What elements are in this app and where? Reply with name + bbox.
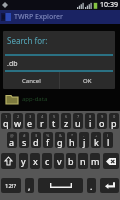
staticText: % (46, 133, 50, 138)
button[interactable]: m (90, 153, 100, 169)
button[interactable]: App icon, navigate up (1, 13, 11, 21)
staticText: + (95, 133, 98, 138)
staticText: 3 (29, 114, 32, 119)
button[interactable]: k (91, 132, 101, 148)
button[interactable]: a (7, 132, 17, 148)
staticText: Cancel (22, 77, 41, 85)
staticText: 4 (41, 114, 44, 119)
staticText: j (83, 136, 86, 148)
staticText: m (91, 155, 100, 167)
button[interactable]: Backspace (103, 153, 119, 169)
button[interactable]: c (42, 153, 52, 169)
staticText: k (94, 136, 99, 148)
button[interactable]: t (49, 113, 59, 129)
staticText: i (89, 117, 92, 129)
staticText: w (14, 117, 22, 129)
button[interactable]: Space (38, 178, 83, 193)
staticText: * (71, 133, 74, 138)
staticText: TWRP Explorer (14, 12, 64, 22)
button[interactable]: q (1, 113, 11, 129)
button[interactable]: 12!? (1, 178, 21, 193)
staticText: t (52, 117, 56, 129)
button[interactable]: l (103, 132, 113, 148)
button[interactable]: i (85, 113, 95, 129)
button[interactable]: y (19, 153, 28, 169)
button[interactable]: . (87, 178, 96, 193)
staticText: z (64, 117, 69, 129)
staticText: o (99, 117, 105, 129)
staticText: OK (83, 77, 92, 85)
staticText: 8 (89, 114, 92, 119)
staticText: n (80, 155, 86, 167)
button[interactable]: u (73, 113, 83, 129)
button[interactable]: o (97, 113, 107, 129)
staticText: @ (10, 133, 14, 138)
staticText: e (27, 117, 33, 129)
staticText: d (33, 136, 39, 148)
staticText: 6 (65, 114, 68, 119)
button[interactable]: b (66, 153, 76, 169)
staticText: f (46, 136, 50, 148)
staticText: , (28, 180, 31, 192)
staticText: app-data (22, 95, 48, 103)
button[interactable]: Enter (100, 178, 119, 193)
staticText: . (90, 180, 93, 192)
staticText: 0 (113, 114, 116, 119)
staticText: h (69, 136, 75, 148)
staticText: y (21, 155, 26, 167)
staticText: s (22, 136, 27, 148)
button[interactable]: g (55, 132, 65, 148)
button[interactable]: h (67, 132, 77, 148)
button[interactable]: n (78, 153, 88, 169)
staticText: $ (35, 133, 38, 138)
staticText: q (3, 117, 9, 129)
staticText: g (57, 136, 63, 148)
staticText: c (45, 155, 50, 167)
staticText: l (107, 136, 110, 148)
button[interactable]: r (37, 113, 47, 129)
staticText: v (57, 155, 62, 167)
button[interactable]: e (25, 113, 35, 129)
button[interactable]: j (79, 132, 89, 148)
staticText: p (111, 117, 117, 129)
staticText: 1 (5, 114, 8, 119)
staticText: b (68, 155, 74, 167)
button[interactable]: Shift (1, 153, 16, 169)
staticText: & (59, 133, 62, 138)
button[interactable]: OK (60, 72, 115, 89)
staticText: u (75, 117, 81, 129)
staticText: 9 (101, 114, 104, 119)
button[interactable]: p (109, 113, 119, 129)
button[interactable]: s (19, 132, 29, 148)
staticText: # (23, 133, 26, 138)
button[interactable]: Cancel (3, 72, 59, 89)
staticText: a (9, 136, 15, 148)
button[interactable]: w (13, 113, 23, 129)
staticText: 7 (77, 114, 80, 119)
staticText: - (83, 133, 85, 138)
staticText: r (40, 117, 44, 129)
staticText: x (33, 155, 38, 167)
staticText: 12!? (5, 182, 17, 190)
button[interactable]: v (54, 153, 64, 169)
button[interactable]: x (30, 153, 40, 169)
staticText: Search for: (7, 35, 48, 46)
staticText: 10:39 (100, 0, 118, 10)
button[interactable]: f (43, 132, 53, 148)
staticText: .db (7, 59, 18, 69)
staticText: ( (107, 133, 109, 138)
staticText: 2 (17, 114, 20, 119)
button[interactable]: d (31, 132, 41, 148)
staticText: 5 (53, 114, 56, 119)
button[interactable]: , (25, 178, 34, 193)
button[interactable]: z (61, 113, 71, 129)
